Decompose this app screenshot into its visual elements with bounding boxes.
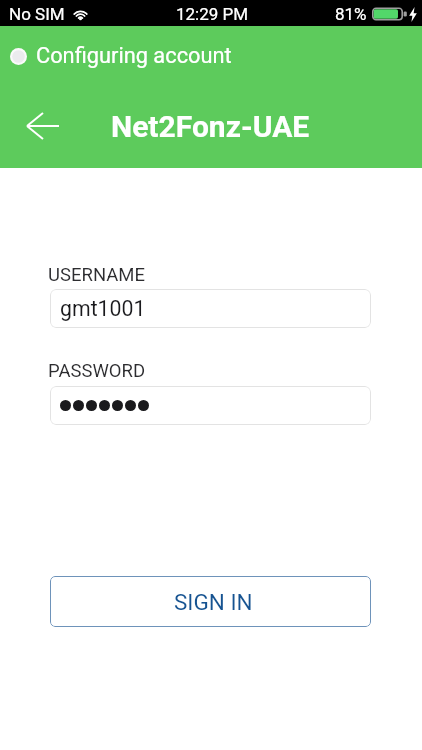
staticText: 12:29 PM (176, 4, 249, 24)
button[interactable]: SIGN IN (50, 576, 371, 627)
staticText: gmt1001 (60, 296, 146, 321)
staticText: SIGN IN (174, 589, 253, 615)
button[interactable]: Back (14, 101, 72, 151)
button[interactable] (50, 386, 371, 425)
button[interactable]: gmt1001 (50, 289, 371, 328)
staticText: Configuring account (36, 43, 232, 69)
button[interactable]: Configuring account (10, 43, 232, 69)
staticText: USERNAME (48, 264, 145, 286)
staticText: Net2Fonz-UAE (111, 109, 310, 144)
staticText: No SIM (9, 4, 65, 24)
staticText: PASSWORD (48, 360, 146, 382)
staticText: 81% (335, 4, 367, 24)
